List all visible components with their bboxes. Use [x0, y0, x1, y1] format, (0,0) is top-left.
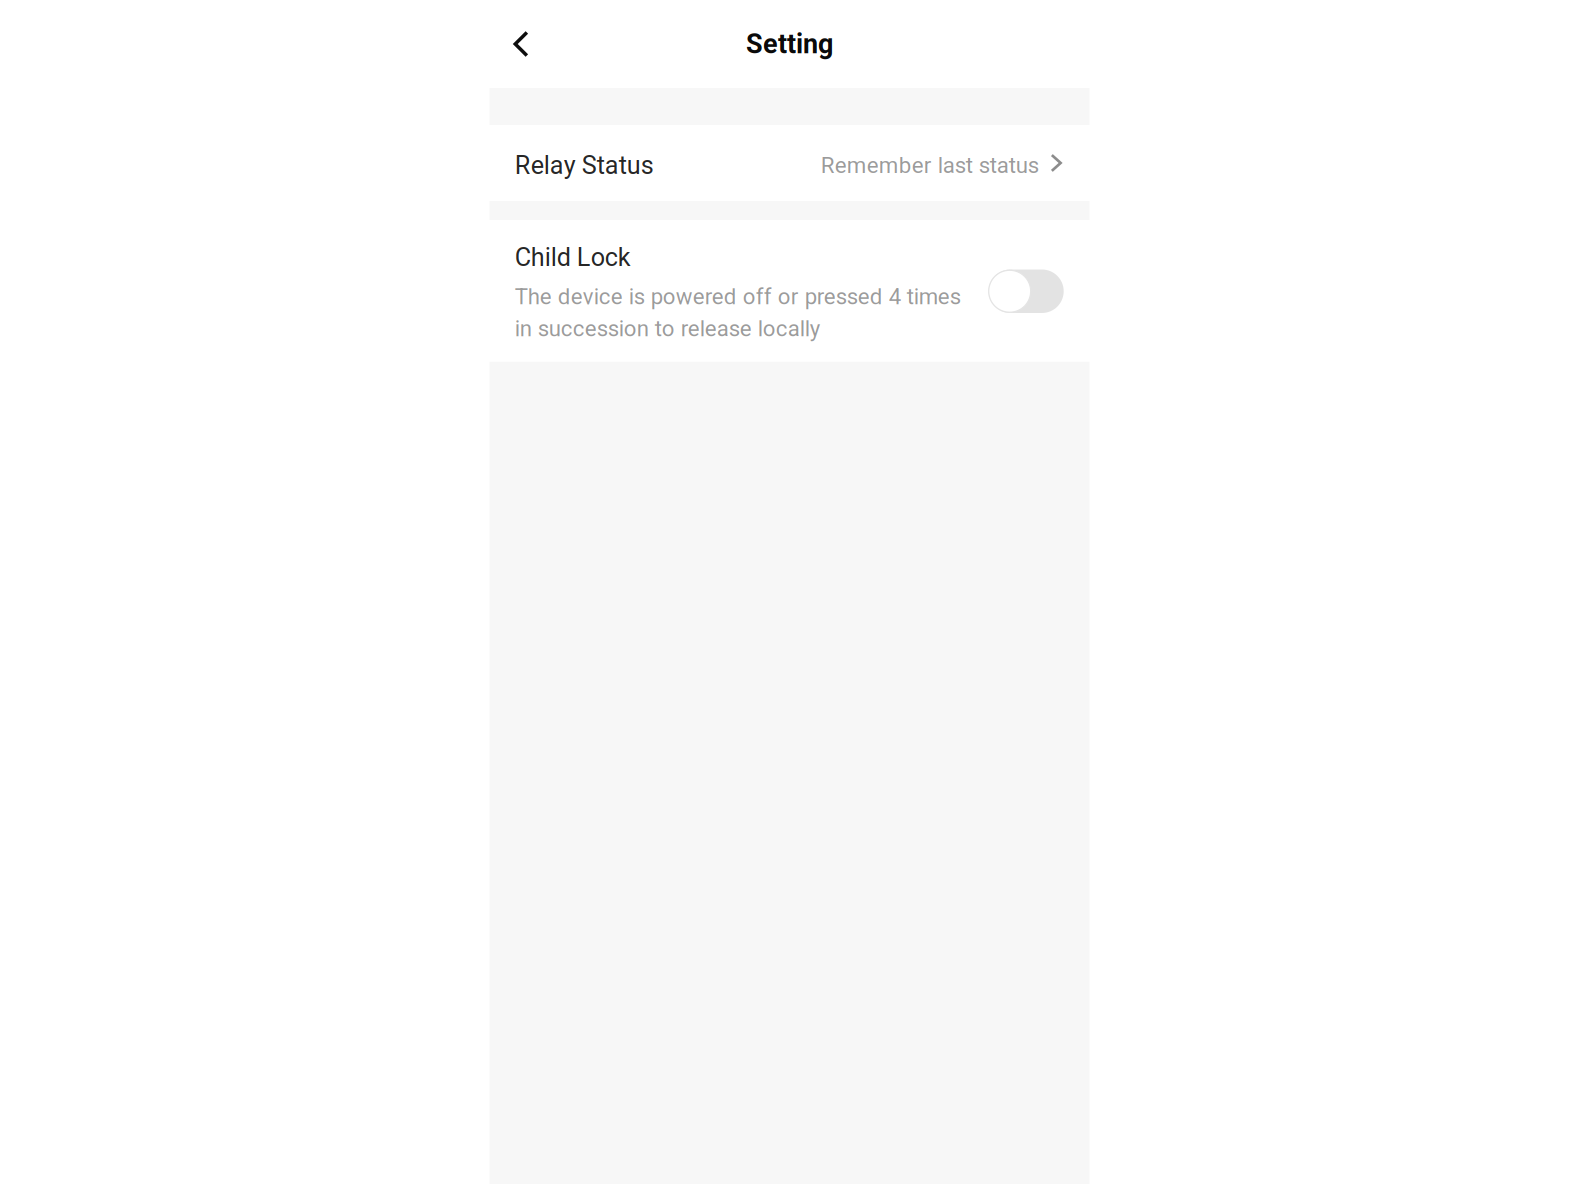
- staticText: Remember last status: [821, 152, 1039, 178]
- button[interactable]: Back: [489, 15, 545, 73]
- staticText: Child Lock: [515, 242, 631, 272]
- staticText: Setting: [746, 28, 833, 60]
- button[interactable]: Child Lock: [989, 269, 1064, 313]
- button[interactable]: Relay Status: [489, 125, 1089, 201]
- staticText: Relay Status: [515, 151, 654, 180]
- staticText: The device is powered off or pressed 4 t…: [515, 283, 961, 342]
